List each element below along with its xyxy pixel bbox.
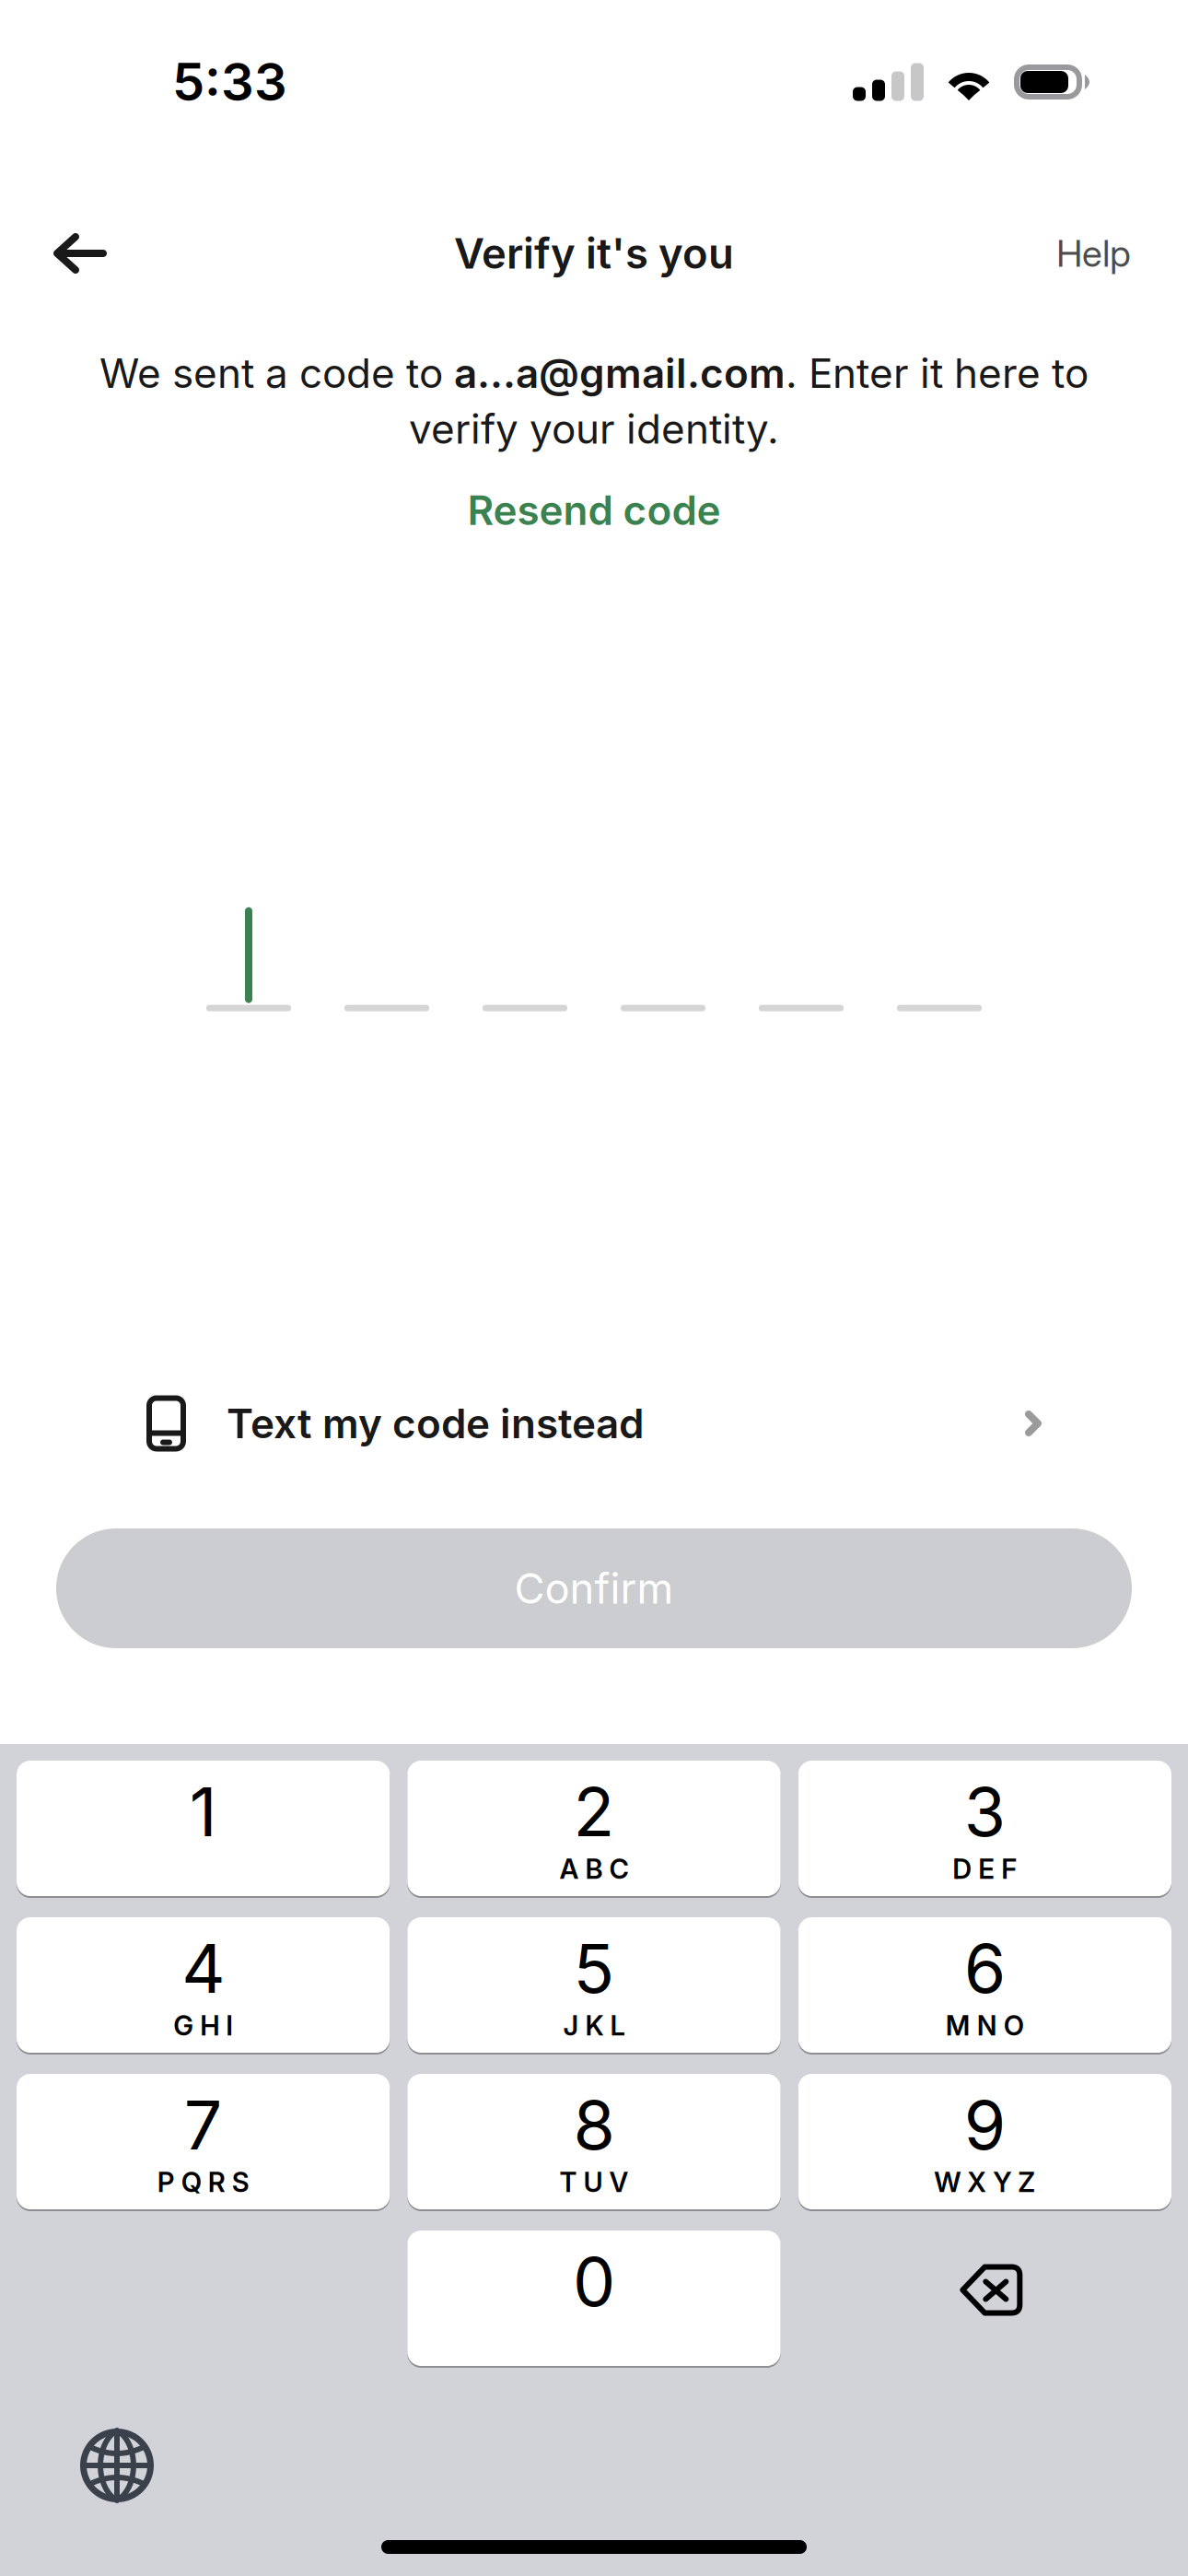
staticText: 7 (184, 2084, 223, 2166)
staticText: Help (1056, 231, 1131, 276)
staticText: J K L (563, 2009, 625, 2042)
button[interactable]: 0 (407, 2231, 781, 2368)
staticText: A B C (559, 1852, 629, 1885)
staticText: 5:33 (172, 51, 287, 113)
staticText: G H I (173, 2009, 233, 2042)
button[interactable]: 9 (798, 2074, 1171, 2211)
staticText: 8 (573, 2084, 615, 2166)
staticText: 1 (189, 1771, 217, 1852)
button[interactable]: Back (0, 204, 144, 303)
button[interactable]: 5 (407, 1917, 781, 2055)
staticText: D E F (953, 1852, 1017, 1885)
button[interactable]: 2 (407, 1761, 781, 1898)
staticText: Confirm (514, 1563, 674, 1614)
button[interactable]: Verification code (180, 907, 1008, 1011)
staticText: Resend code (467, 486, 721, 535)
staticText: Verify it's you (454, 228, 734, 279)
button[interactable]: Text my code instead (0, 1373, 1188, 1474)
button[interactable]: 8 (407, 2074, 781, 2211)
staticText: M N O (946, 2009, 1024, 2042)
button[interactable]: 6 (798, 1917, 1171, 2055)
staticText: T U V (559, 2166, 629, 2198)
staticText: 9 (964, 2084, 1005, 2166)
button[interactable]: 3 (798, 1761, 1171, 1898)
button[interactable]: Delete (798, 2231, 1171, 2367)
staticText: 5 (573, 1927, 615, 2009)
button[interactable]: Confirm (0, 1528, 1188, 1648)
staticText: verify your identity. (409, 404, 779, 453)
staticText: 0 (573, 2241, 615, 2322)
staticText: 3 (964, 1771, 1005, 1852)
button[interactable]: 7 (17, 2074, 390, 2211)
button[interactable]: Resend code (440, 453, 748, 546)
button[interactable]: 4 (17, 1917, 390, 2055)
staticText: P Q R S (157, 2166, 249, 2198)
button[interactable]: Help (1019, 201, 1188, 306)
staticText: 2 (573, 1771, 615, 1852)
staticText: 6 (964, 1927, 1005, 2009)
staticText: W X Y Z (934, 2166, 1035, 2198)
staticText: We sent a code to a...a@gmail.com. Enter… (99, 349, 1089, 397)
button[interactable]: 1 (17, 1761, 390, 1898)
staticText: 4 (182, 1927, 225, 2009)
button[interactable]: Next keyboard (0, 2406, 181, 2506)
staticText: Text my code instead (227, 1399, 644, 1448)
